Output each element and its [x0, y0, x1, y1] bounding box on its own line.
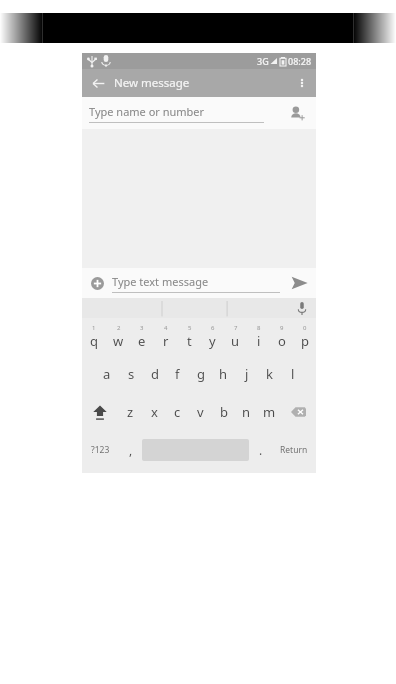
staticText: z — [127, 403, 134, 421]
staticText: t — [187, 332, 192, 350]
button[interactable]: s — [119, 355, 143, 393]
staticText: 6 — [211, 324, 215, 332]
staticText: f — [175, 365, 180, 383]
button[interactable]: Send — [288, 272, 310, 294]
staticText: h — [219, 365, 228, 383]
staticText: w — [113, 332, 124, 350]
button[interactable]: h — [212, 355, 235, 393]
button[interactable]: 5 — [178, 318, 201, 355]
button[interactable]: k — [258, 355, 281, 393]
staticText: o — [278, 332, 286, 350]
staticText: Type name or number — [89, 104, 205, 119]
button[interactable]: 1 — [82, 318, 106, 355]
button[interactable]: 6 — [201, 318, 224, 355]
staticText: 4 — [164, 324, 168, 332]
button[interactable]: 8 — [247, 318, 270, 355]
button[interactable]: n — [235, 393, 258, 431]
button[interactable]: Backspace — [281, 393, 316, 431]
button[interactable]: j — [235, 355, 258, 393]
staticText: l — [291, 365, 295, 383]
staticText: . — [259, 442, 263, 458]
button[interactable]: More options — [292, 73, 312, 93]
staticText: Return — [280, 444, 308, 456]
button[interactable]: z — [118, 393, 142, 431]
staticText: 3 — [140, 324, 144, 332]
staticText: 7 — [234, 324, 238, 332]
staticText: d — [151, 365, 159, 383]
staticText: e — [138, 332, 146, 350]
staticText: 3G — [257, 55, 269, 67]
staticText: , — [129, 442, 133, 458]
button[interactable]: Back — [88, 73, 108, 93]
button[interactable]: Return — [272, 431, 316, 469]
button[interactable]: 9 — [270, 318, 293, 355]
staticText: 5 — [188, 324, 192, 332]
button[interactable]: d — [143, 355, 166, 393]
staticText: 0 — [303, 324, 307, 332]
staticText: s — [128, 365, 135, 383]
button[interactable]: 4 — [154, 318, 178, 355]
staticText: m — [263, 403, 276, 421]
button[interactable]: 7 — [224, 318, 247, 355]
button[interactable]: v — [189, 393, 212, 431]
staticText: b — [220, 403, 228, 421]
staticText: i — [257, 332, 261, 350]
button[interactable]: , — [119, 431, 142, 469]
staticText: ?123 — [91, 444, 110, 456]
button[interactable]: Voice input — [293, 299, 311, 317]
button[interactable]: . — [249, 431, 272, 469]
button[interactable]: m — [258, 393, 281, 431]
staticText: u — [231, 332, 240, 350]
button[interactable]: l — [281, 355, 304, 393]
button[interactable]: 3 — [130, 318, 154, 355]
staticText: y — [209, 332, 216, 350]
button[interactable]: 0 — [293, 318, 316, 355]
staticText: x — [151, 403, 158, 421]
button[interactable]: Add attachment — [88, 274, 106, 292]
button[interactable]: g — [189, 355, 212, 393]
staticText: a — [103, 365, 111, 383]
button[interactable]: Add contact — [286, 102, 308, 124]
button[interactable]: c — [166, 393, 189, 431]
button[interactable]: b — [212, 393, 235, 431]
staticText: 9 — [280, 324, 284, 332]
button[interactable]: f — [166, 355, 189, 393]
button[interactable]: ?123 — [82, 431, 119, 469]
staticText: v — [197, 403, 204, 421]
button[interactable]: 2 — [106, 318, 130, 355]
staticText: k — [266, 365, 273, 383]
button[interactable]: Shift — [82, 393, 118, 431]
staticText: Type text message — [112, 274, 209, 289]
staticText: 1 — [92, 324, 96, 332]
staticText: g — [197, 365, 205, 383]
staticText: New message — [114, 75, 190, 91]
staticText: c — [174, 403, 181, 421]
staticText: 8 — [257, 324, 261, 332]
staticText: r — [163, 332, 169, 350]
staticText: q — [90, 332, 98, 350]
staticText: 08:28 — [288, 55, 312, 67]
button[interactable]: Type text message — [112, 274, 280, 293]
staticText: p — [301, 332, 309, 350]
button[interactable]: Type name or number — [89, 104, 264, 123]
button[interactable]: x — [142, 393, 166, 431]
staticText: j — [245, 365, 249, 383]
staticText: n — [242, 403, 251, 421]
button[interactable]: a — [95, 355, 119, 393]
staticText: 2 — [117, 324, 121, 332]
